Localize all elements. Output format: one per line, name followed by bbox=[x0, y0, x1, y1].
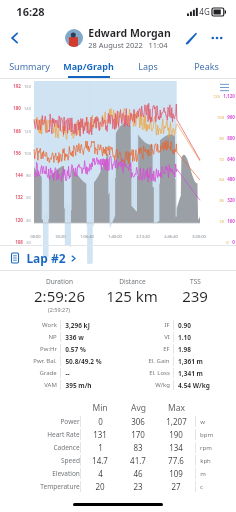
staticText: 1 bbox=[98, 442, 103, 453]
staticText: 192 bbox=[13, 83, 21, 89]
button[interactable]: Summary bbox=[0, 54, 59, 78]
staticText: NP bbox=[48, 333, 57, 341]
staticText: 1,361 m bbox=[178, 357, 203, 366]
staticText: c bbox=[200, 483, 203, 491]
button[interactable]: Chart options bbox=[218, 81, 230, 93]
staticText: 156 bbox=[13, 150, 21, 156]
staticText: 23 bbox=[133, 481, 143, 492]
staticText: EF bbox=[163, 345, 170, 353]
staticText: 120 bbox=[24, 129, 31, 134]
staticText: kph bbox=[200, 457, 211, 465]
staticText: 0.90 bbox=[178, 321, 191, 330]
staticText: Avg bbox=[131, 402, 146, 414]
staticText: El. Gain bbox=[148, 357, 170, 365]
staticText: 180 bbox=[13, 105, 21, 111]
staticText: 14.7 bbox=[92, 455, 108, 466]
staticText: 3:20:00 bbox=[192, 234, 206, 239]
staticText: 2:59:26 bbox=[34, 286, 85, 306]
staticText: 72 bbox=[219, 157, 224, 162]
staticText: 27 bbox=[171, 481, 181, 492]
staticText: Min bbox=[92, 402, 108, 414]
staticText: 33:20 bbox=[55, 234, 66, 239]
staticText: 160 bbox=[227, 218, 235, 224]
staticText: rpm bbox=[200, 444, 212, 452]
staticText: VAM bbox=[44, 381, 57, 389]
staticText: 131 bbox=[93, 429, 107, 440]
staticText: Distance bbox=[119, 277, 146, 286]
staticText: TSS bbox=[190, 277, 201, 286]
staticText: 50.8/49.2 % bbox=[65, 357, 102, 366]
button[interactable]: Laps bbox=[118, 54, 177, 78]
staticText: 1.98 bbox=[178, 345, 191, 354]
staticText: 1.10 bbox=[178, 333, 191, 342]
staticText: 83 bbox=[133, 442, 143, 453]
staticText: 18 bbox=[219, 219, 224, 224]
button[interactable]: Map/Graph bbox=[59, 54, 118, 78]
staticText: Edward Morgan bbox=[88, 26, 171, 40]
staticText: 100 bbox=[24, 151, 31, 156]
staticText: 40 bbox=[26, 218, 31, 223]
staticText: Power bbox=[60, 417, 80, 426]
staticText: 11:04 bbox=[148, 40, 168, 50]
button[interactable]: Peaks bbox=[177, 54, 236, 78]
staticText: Peaks bbox=[194, 60, 219, 72]
staticText: 4.54 W/kg bbox=[178, 381, 210, 390]
staticText: 3,296 kJ bbox=[65, 321, 90, 330]
staticText: w bbox=[200, 418, 205, 426]
staticText: 46 bbox=[133, 468, 143, 479]
staticText: 2:13:20 bbox=[136, 234, 150, 239]
staticText: 320 bbox=[227, 197, 235, 203]
staticText: 41.7 bbox=[130, 455, 146, 466]
staticText: 80 bbox=[26, 173, 31, 178]
staticText: Lap #2 bbox=[26, 250, 66, 266]
staticText: 108 bbox=[15, 239, 23, 245]
staticText: Pw:Hr bbox=[40, 345, 57, 353]
staticText: 1,207 bbox=[166, 416, 187, 427]
staticText: 0 bbox=[226, 240, 229, 245]
staticText: 144 bbox=[15, 172, 23, 178]
button[interactable]: Lap #2 bbox=[0, 246, 236, 270]
staticText: bpm bbox=[200, 431, 213, 439]
staticText: Heart Rate bbox=[47, 430, 80, 439]
staticText: 00:00 bbox=[30, 234, 41, 239]
button[interactable]: Edit bbox=[178, 25, 204, 51]
staticText: 800 bbox=[227, 135, 235, 141]
staticText: 60 bbox=[26, 195, 31, 200]
staticText: 0 bbox=[98, 416, 103, 427]
staticText: Pwr. Bal. bbox=[33, 357, 57, 365]
staticText: Map/Graph bbox=[63, 60, 114, 72]
staticText: Grade bbox=[39, 369, 57, 377]
staticText: 168 bbox=[13, 128, 21, 134]
staticText: 480 bbox=[227, 176, 235, 182]
staticText: 20 bbox=[95, 481, 105, 492]
staticText: IF bbox=[164, 321, 170, 329]
staticText: 1:40:00 bbox=[108, 234, 122, 239]
staticText: 54 bbox=[219, 177, 224, 182]
staticText: 1,341 m bbox=[178, 369, 203, 378]
staticText: 36 bbox=[219, 198, 224, 203]
staticText: 336 w bbox=[65, 333, 84, 342]
staticText: 77.6 bbox=[168, 455, 184, 466]
staticText: El. Loss bbox=[149, 369, 170, 377]
staticText: 640 bbox=[227, 156, 235, 162]
staticText: 132 bbox=[15, 194, 23, 200]
staticText: 239 bbox=[182, 286, 208, 306]
staticText: (2:59:27) bbox=[48, 306, 70, 313]
staticText: 4 bbox=[98, 468, 103, 479]
staticText: 960 bbox=[227, 114, 235, 120]
staticText: 134 bbox=[169, 442, 183, 453]
staticText: 125 km bbox=[106, 286, 158, 306]
staticText: Duration bbox=[46, 277, 73, 286]
staticText: 140 bbox=[24, 106, 31, 111]
button[interactable]: More options bbox=[204, 25, 230, 51]
staticText: Work bbox=[42, 321, 57, 329]
staticText: 190 bbox=[169, 429, 183, 440]
staticText: 120 bbox=[15, 217, 23, 223]
staticText: 0 bbox=[232, 239, 235, 245]
staticText: 306 bbox=[131, 416, 145, 427]
staticText: 1:06:40 bbox=[80, 234, 94, 239]
staticText: 90 bbox=[219, 136, 224, 141]
button[interactable]: Back bbox=[0, 23, 30, 53]
staticText: VI bbox=[164, 333, 170, 341]
staticText: Cadence bbox=[53, 443, 80, 452]
